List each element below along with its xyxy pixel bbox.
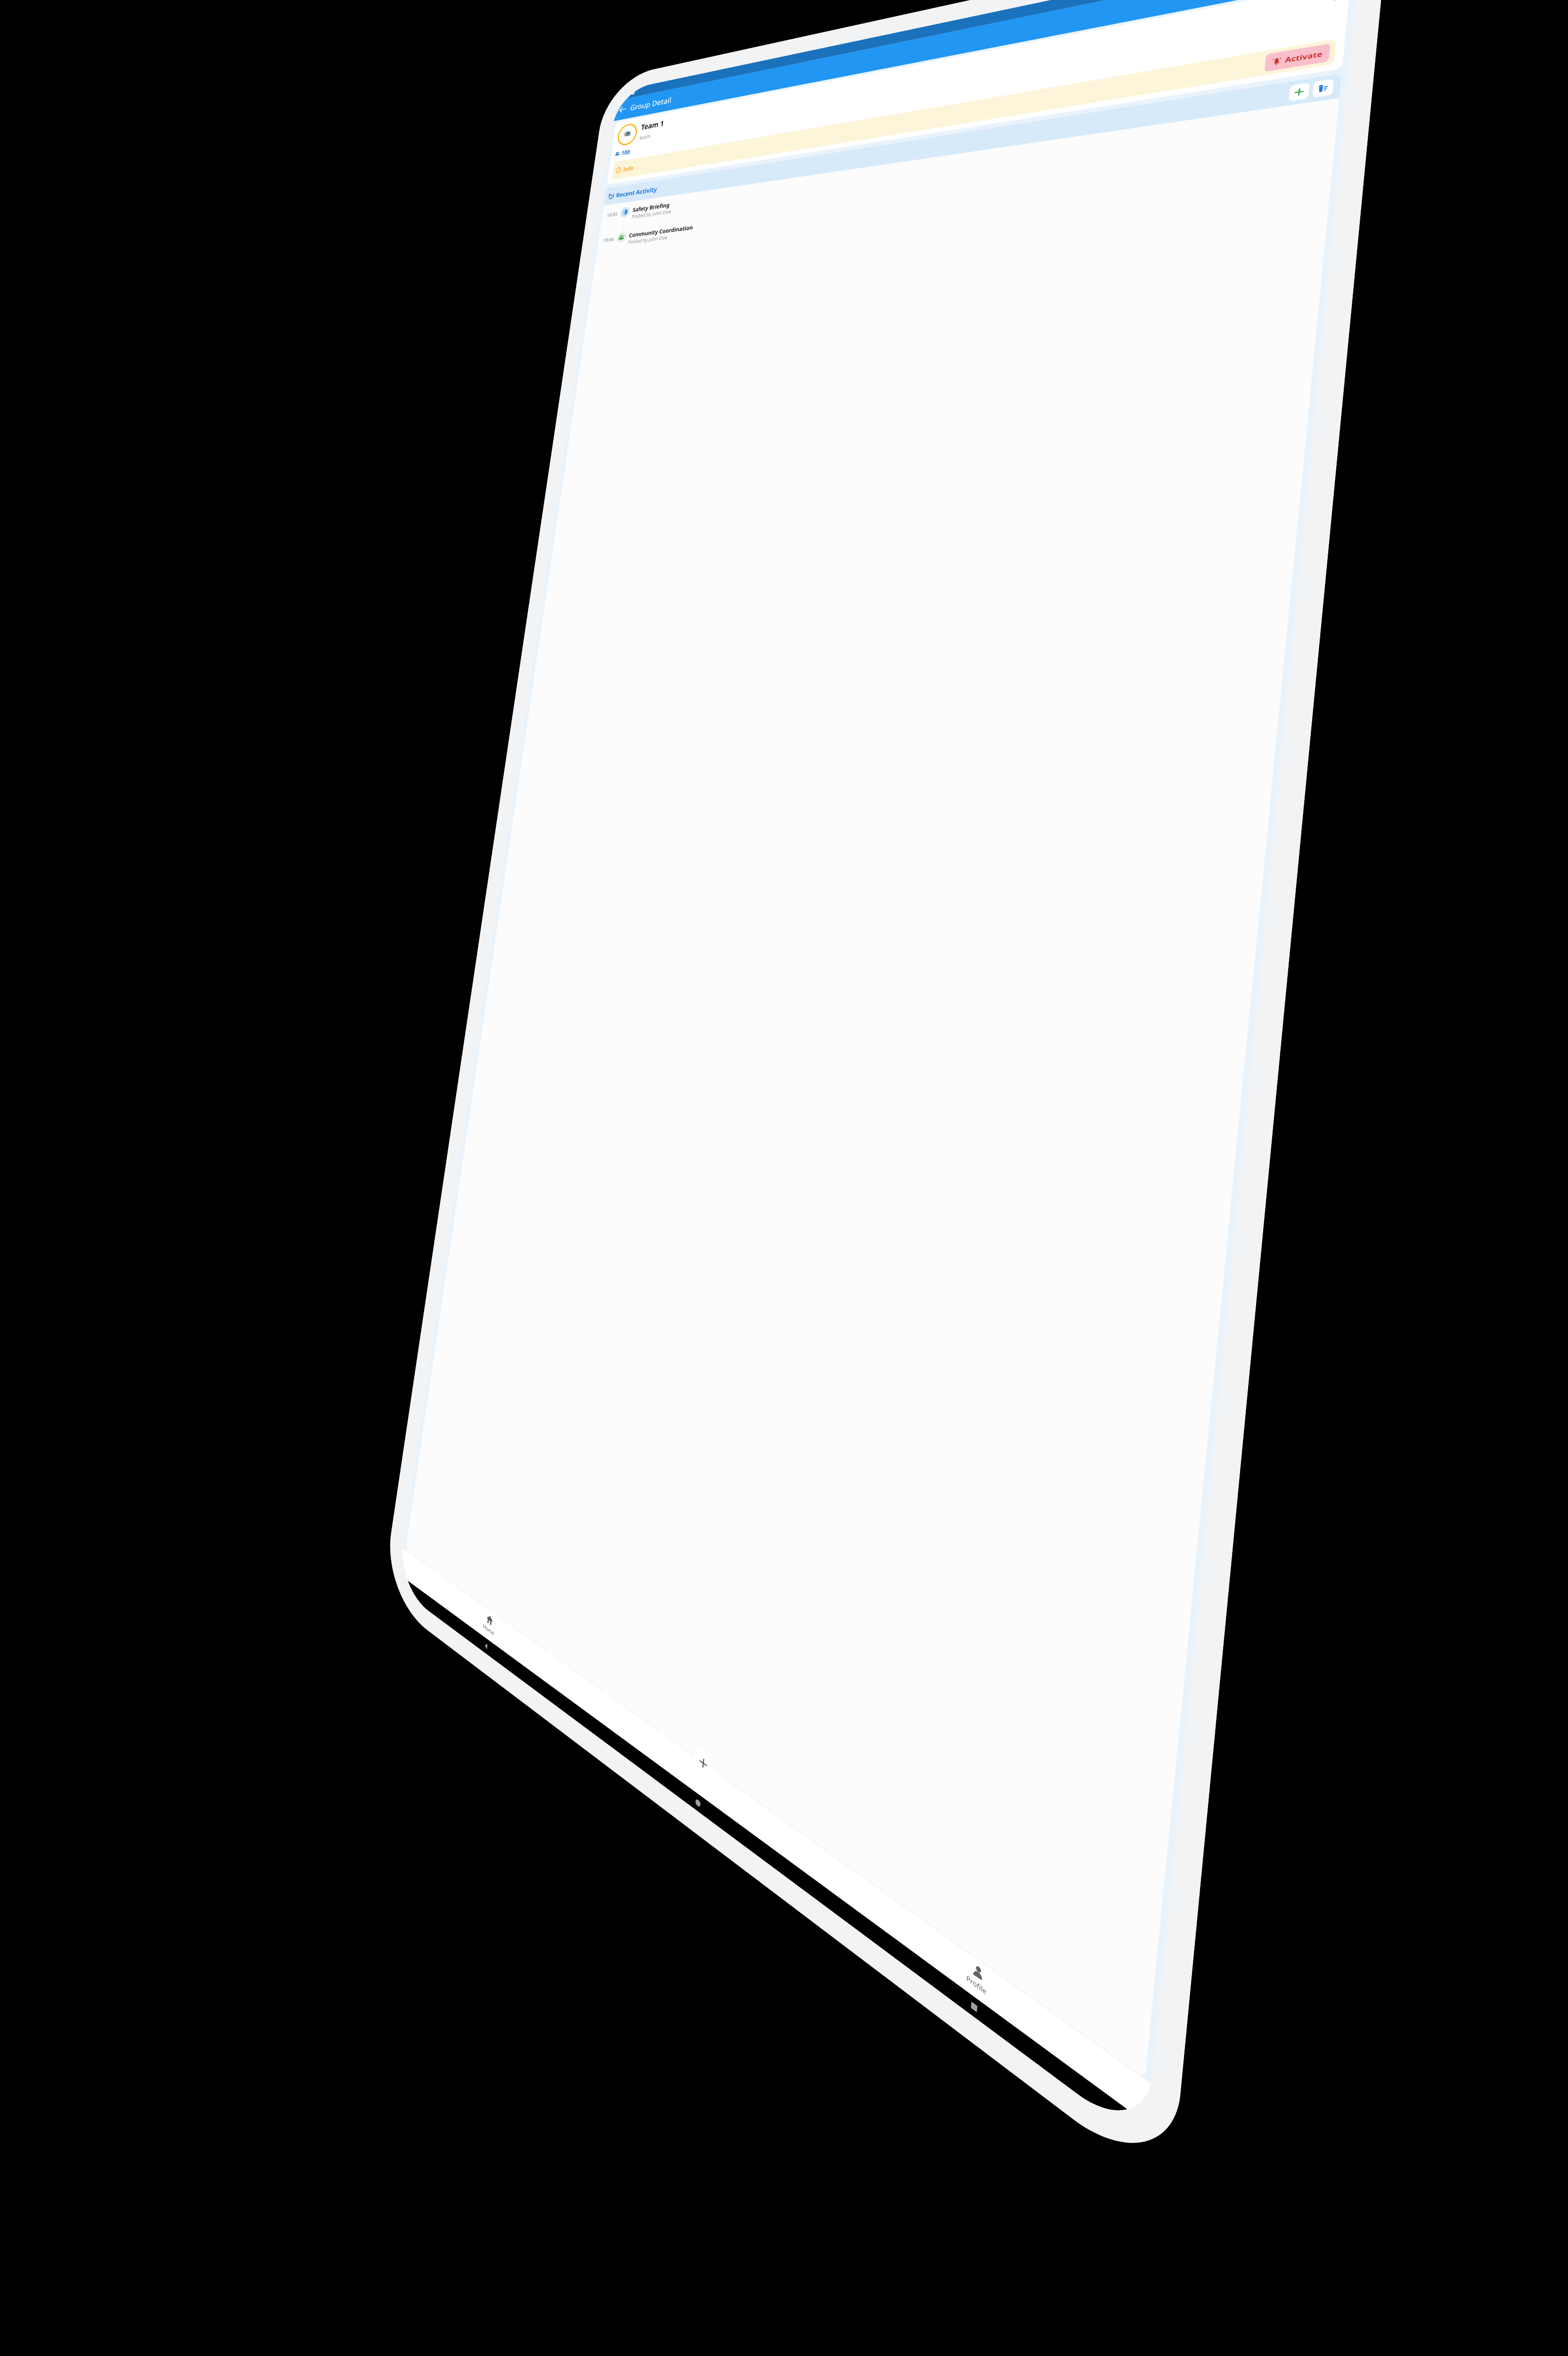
staticText: 16:56 bbox=[619, 91, 629, 98]
button[interactable]: Info bbox=[615, 164, 634, 174]
button[interactable]: Activate bbox=[1264, 43, 1330, 72]
staticText: Profile bbox=[966, 1973, 987, 1997]
staticText: Info bbox=[623, 164, 634, 173]
button[interactable]: Add activity bbox=[1288, 82, 1310, 101]
button[interactable]: Add bbox=[692, 1744, 715, 1782]
staticText: 18:45 bbox=[605, 211, 620, 219]
staticText: Posted by John Doe bbox=[628, 234, 668, 245]
staticText: Activate bbox=[1285, 49, 1323, 65]
button[interactable]: 18:45 bbox=[599, 105, 1339, 235]
staticText: Community Coordination bbox=[629, 223, 694, 239]
staticText: Safety Briefing bbox=[632, 201, 670, 214]
button[interactable]: Back bbox=[613, 99, 632, 120]
staticText: Group Detail bbox=[630, 95, 672, 113]
staticText: Team 1 bbox=[640, 118, 665, 132]
staticText: 18:44 bbox=[601, 236, 616, 244]
staticText: Recent Activity bbox=[616, 185, 658, 199]
button[interactable]: 18:44 bbox=[597, 140, 1335, 249]
button[interactable]: Home bbox=[400, 1552, 590, 1705]
staticText: Home bbox=[483, 1622, 495, 1637]
button[interactable]: Share bbox=[1322, 0, 1342, 6]
button[interactable]: Clear activity bbox=[1312, 79, 1334, 98]
staticText: team bbox=[639, 132, 651, 141]
staticText: 100 bbox=[621, 148, 631, 157]
staticText: Posted by John Doe bbox=[631, 208, 672, 220]
button[interactable]: Profile bbox=[828, 1860, 1151, 2115]
